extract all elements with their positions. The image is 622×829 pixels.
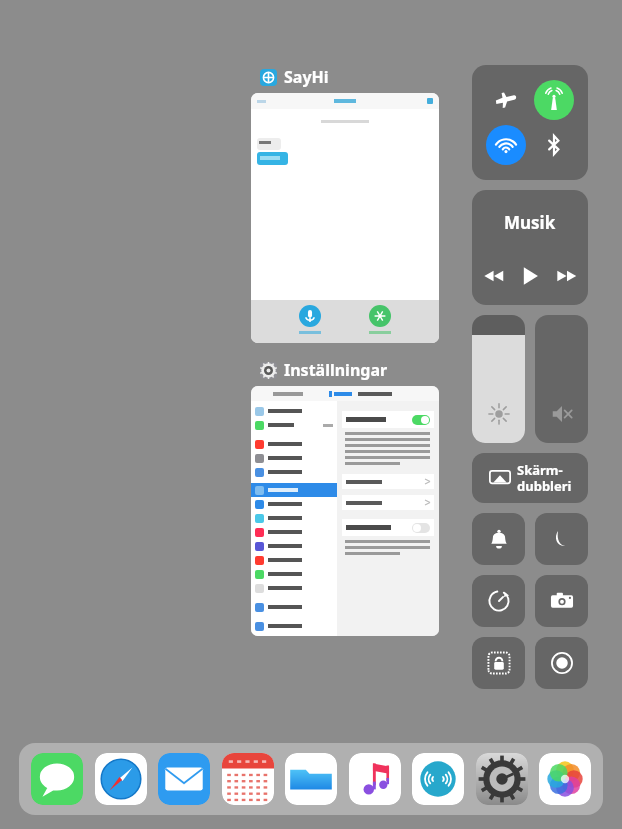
button[interactable]: Mobildata: [534, 80, 574, 120]
button[interactable]: Filer: [285, 753, 337, 805]
button[interactable]: Ljusstyrka: [472, 315, 525, 443]
button[interactable]: Skärminspelning: [535, 637, 588, 689]
button[interactable]: [299, 305, 321, 334]
button[interactable]: Timer: [472, 575, 525, 627]
button[interactable]: Bilder: [539, 753, 591, 805]
button[interactable]: Safari: [95, 753, 147, 805]
button[interactable]: Musik: [472, 190, 588, 305]
button[interactable]: Föregående: [481, 263, 507, 289]
button[interactable]: [369, 305, 391, 334]
button[interactable]: Kalender: [222, 753, 274, 805]
button[interactable]: AirDrop: [412, 753, 464, 805]
button[interactable]: Stör ej: [535, 513, 588, 565]
staticText: SayHi: [284, 66, 329, 88]
staticText: Inställningar: [284, 359, 388, 381]
button[interactable]: Volym: [535, 315, 588, 443]
button[interactable]: Musik: [349, 753, 401, 805]
staticText: Skärm- dubbleri: [517, 461, 572, 495]
button[interactable]: Flygplansläge: [486, 80, 526, 120]
button[interactable]: Bluetooth: [534, 125, 574, 165]
button[interactable]: Lås rotation: [472, 637, 525, 689]
button[interactable]: [251, 93, 439, 343]
button[interactable]: Inställningar: [476, 753, 528, 805]
button[interactable]: [251, 386, 439, 636]
button[interactable]: Spela: [515, 261, 545, 291]
button[interactable]: Ljud: [472, 513, 525, 565]
button[interactable]: SayHi: [260, 64, 329, 90]
button[interactable]: Wi-Fi: [486, 125, 526, 165]
button[interactable]: Meddelanden: [31, 753, 83, 805]
button[interactable]: Kamera: [535, 575, 588, 627]
button[interactable]: Nästa: [554, 263, 580, 289]
button[interactable]: Inställningar: [260, 357, 388, 383]
button[interactable]: Skärm- dubbleri: [472, 453, 588, 503]
staticText: Musik: [504, 211, 556, 234]
button[interactable]: Mail: [158, 753, 210, 805]
